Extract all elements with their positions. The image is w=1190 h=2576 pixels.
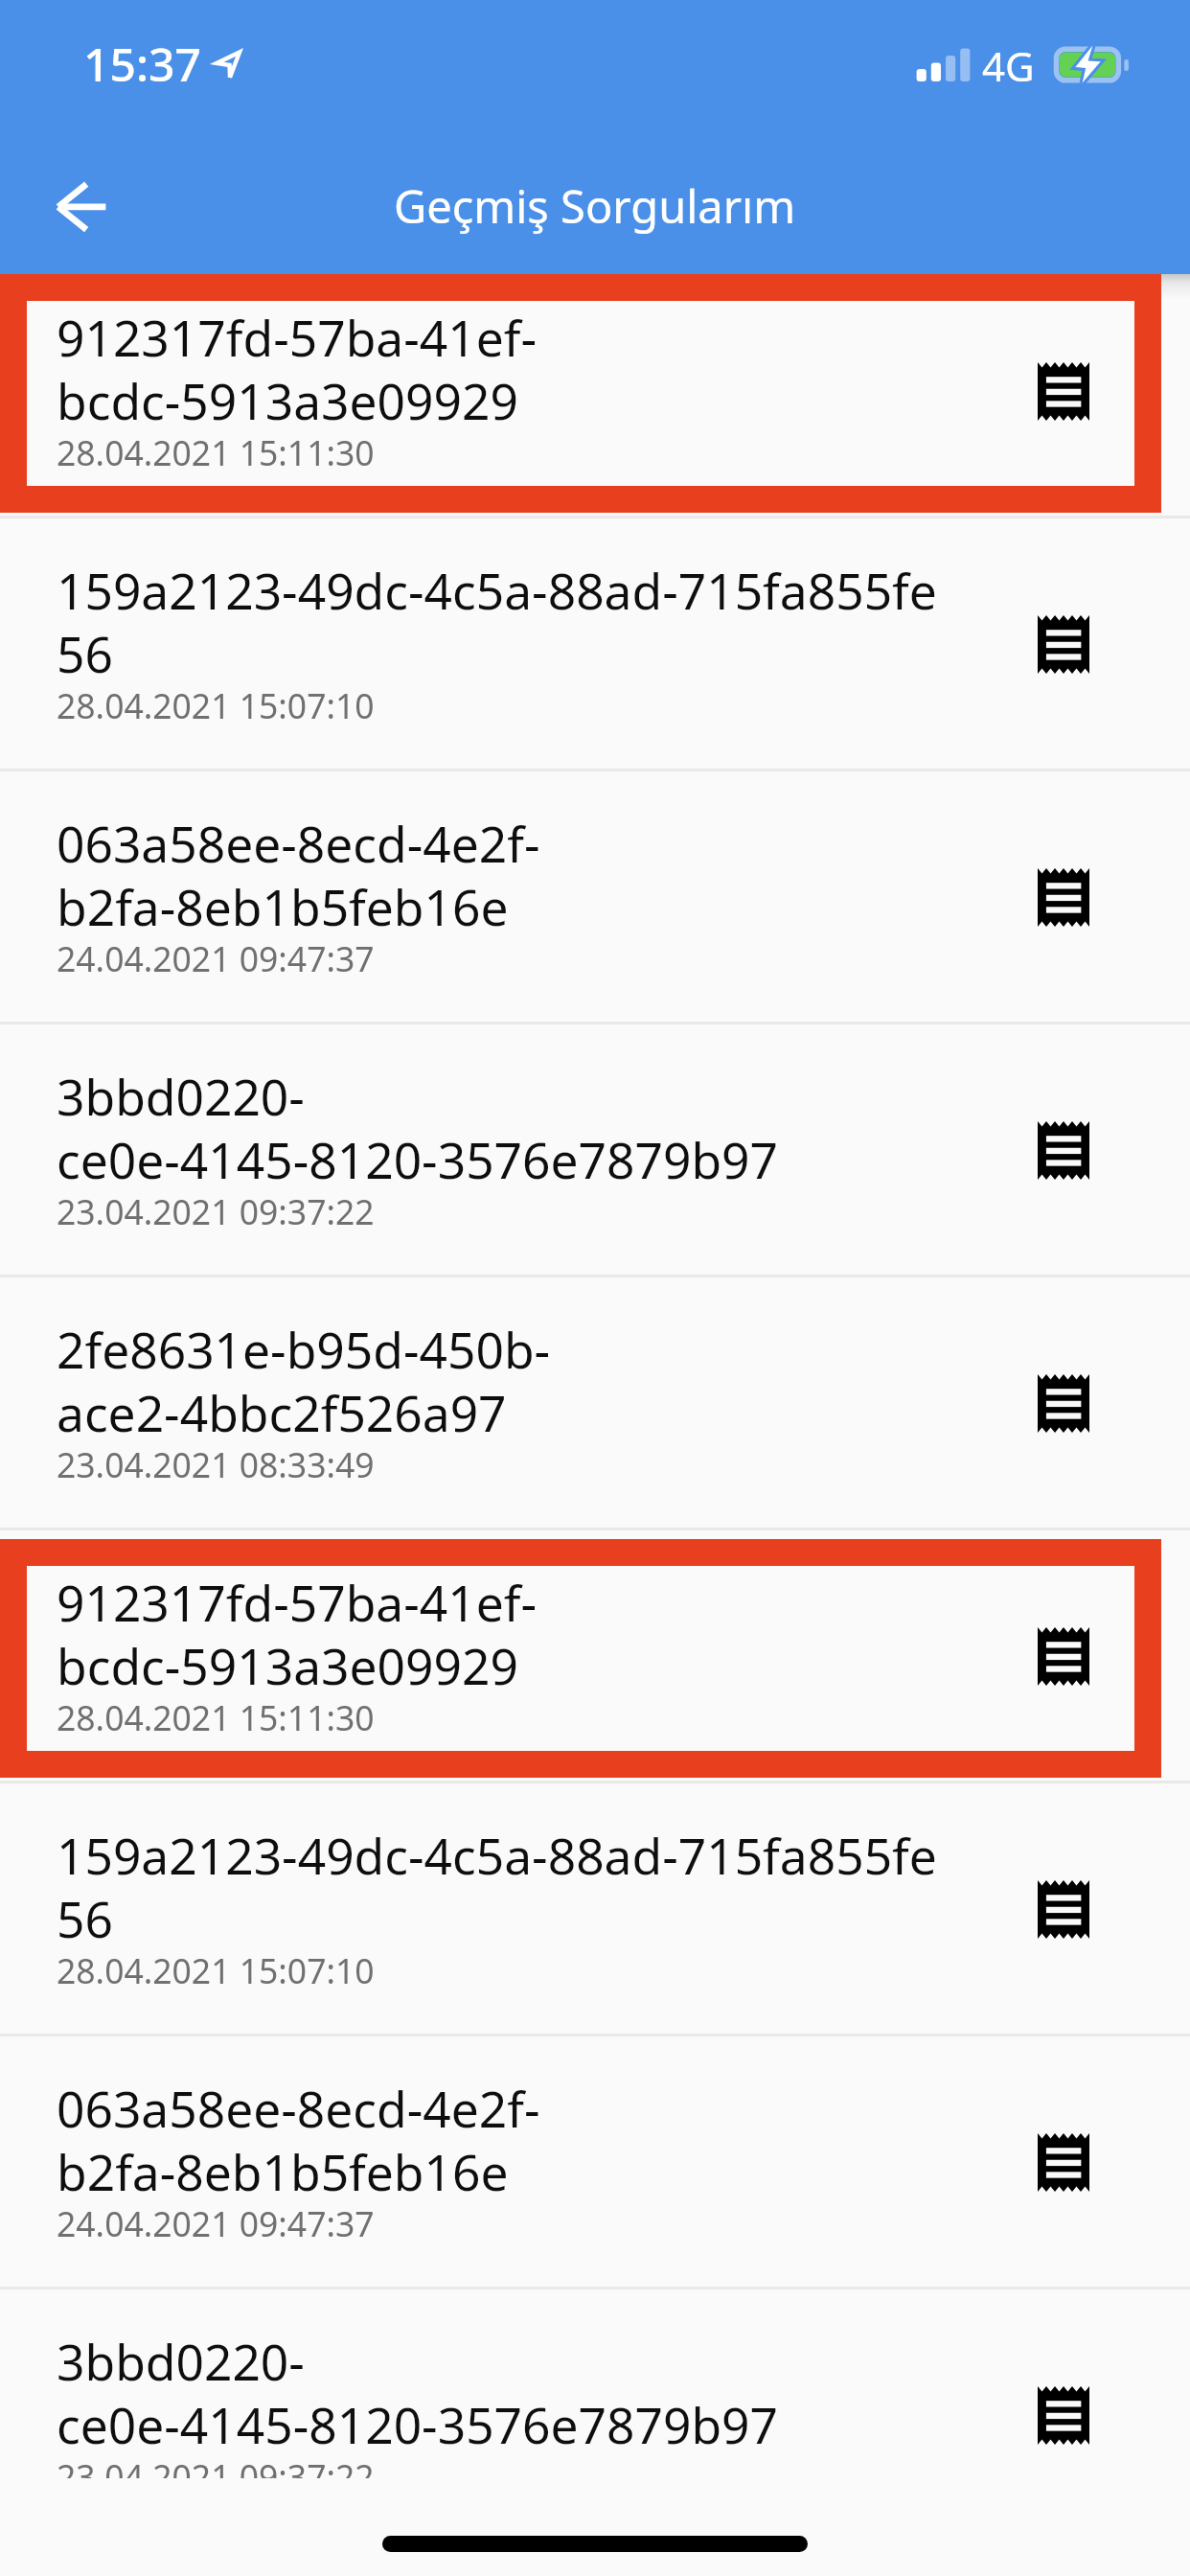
staticText: 063a58ee-8ecd-4e2f-b2fa-8eb1b5feb16e xyxy=(57,2075,938,2205)
staticText: 159a2123-49dc-4c5a-88ad-715fa855fe56 xyxy=(57,557,938,687)
staticText: 28.04.2021 15:11:30 xyxy=(57,1694,375,1740)
button[interactable]: Show receipt xyxy=(1012,339,1115,443)
button[interactable]: 2fe8631e-b95d-450b-ace2-4bbc2f526a97 xyxy=(0,1277,1190,1530)
button[interactable]: Show receipt xyxy=(1012,845,1115,949)
button[interactable]: Show receipt xyxy=(1012,592,1115,696)
staticText: 912317fd-57ba-41ef-bcdc-5913a3e09929 xyxy=(57,304,938,434)
button[interactable]: Show receipt xyxy=(1012,1604,1115,1708)
staticText: 912317fd-57ba-41ef-bcdc-5913a3e09929 xyxy=(57,1569,938,1699)
button[interactable]: 063a58ee-8ecd-4e2f-b2fa-8eb1b5feb16e xyxy=(0,2036,1190,2289)
button[interactable]: Show receipt xyxy=(1012,1351,1115,1455)
staticText: 23.04.2021 08:33:49 xyxy=(57,1441,375,1487)
staticText: 24.04.2021 09:47:37 xyxy=(57,2200,375,2246)
button[interactable]: 912317fd-57ba-41ef-bcdc-5913a3e09929 xyxy=(0,274,1190,518)
staticText: 15:37 xyxy=(83,33,201,95)
button[interactable]: Show receipt xyxy=(1012,1098,1115,1202)
button[interactable]: Show receipt xyxy=(1012,2363,1115,2467)
staticText: 3bbd0220-ce0e-4145-8120-3576e7879b97 xyxy=(57,1063,938,1193)
button[interactable]: Show receipt xyxy=(1012,1857,1115,1961)
staticText: 28.04.2021 15:07:10 xyxy=(57,1947,375,1993)
button[interactable]: Back xyxy=(31,157,130,257)
button[interactable]: 159a2123-49dc-4c5a-88ad-715fa855fe56 xyxy=(0,518,1190,771)
staticText: 23.04.2021 09:37:22 xyxy=(57,2453,375,2478)
staticText: 28.04.2021 15:07:10 xyxy=(57,682,375,728)
button[interactable]: 063a58ee-8ecd-4e2f-b2fa-8eb1b5feb16e xyxy=(0,771,1190,1024)
button[interactable]: 3bbd0220-ce0e-4145-8120-3576e7879b97 xyxy=(0,1024,1190,1277)
staticText: 23.04.2021 09:37:22 xyxy=(57,1188,375,1234)
staticText: 3bbd0220-ce0e-4145-8120-3576e7879b97 xyxy=(57,2328,938,2458)
button[interactable]: 159a2123-49dc-4c5a-88ad-715fa855fe56 xyxy=(0,1783,1190,2036)
button[interactable]: Show receipt xyxy=(1012,2110,1115,2214)
staticText: 159a2123-49dc-4c5a-88ad-715fa855fe56 xyxy=(57,1822,938,1952)
staticText: 2fe8631e-b95d-450b-ace2-4bbc2f526a97 xyxy=(57,1316,938,1446)
staticText: 4G xyxy=(982,38,1035,93)
staticText: 28.04.2021 15:11:30 xyxy=(57,429,375,475)
button[interactable]: 912317fd-57ba-41ef-bcdc-5913a3e09929 xyxy=(0,1530,1190,1783)
staticText: 24.04.2021 09:47:37 xyxy=(57,935,375,981)
button[interactable]: 3bbd0220-ce0e-4145-8120-3576e7879b97 xyxy=(0,2289,1190,2478)
staticText: Geçmiş Sorgularım xyxy=(394,175,796,237)
staticText: 063a58ee-8ecd-4e2f-b2fa-8eb1b5feb16e xyxy=(57,810,938,940)
